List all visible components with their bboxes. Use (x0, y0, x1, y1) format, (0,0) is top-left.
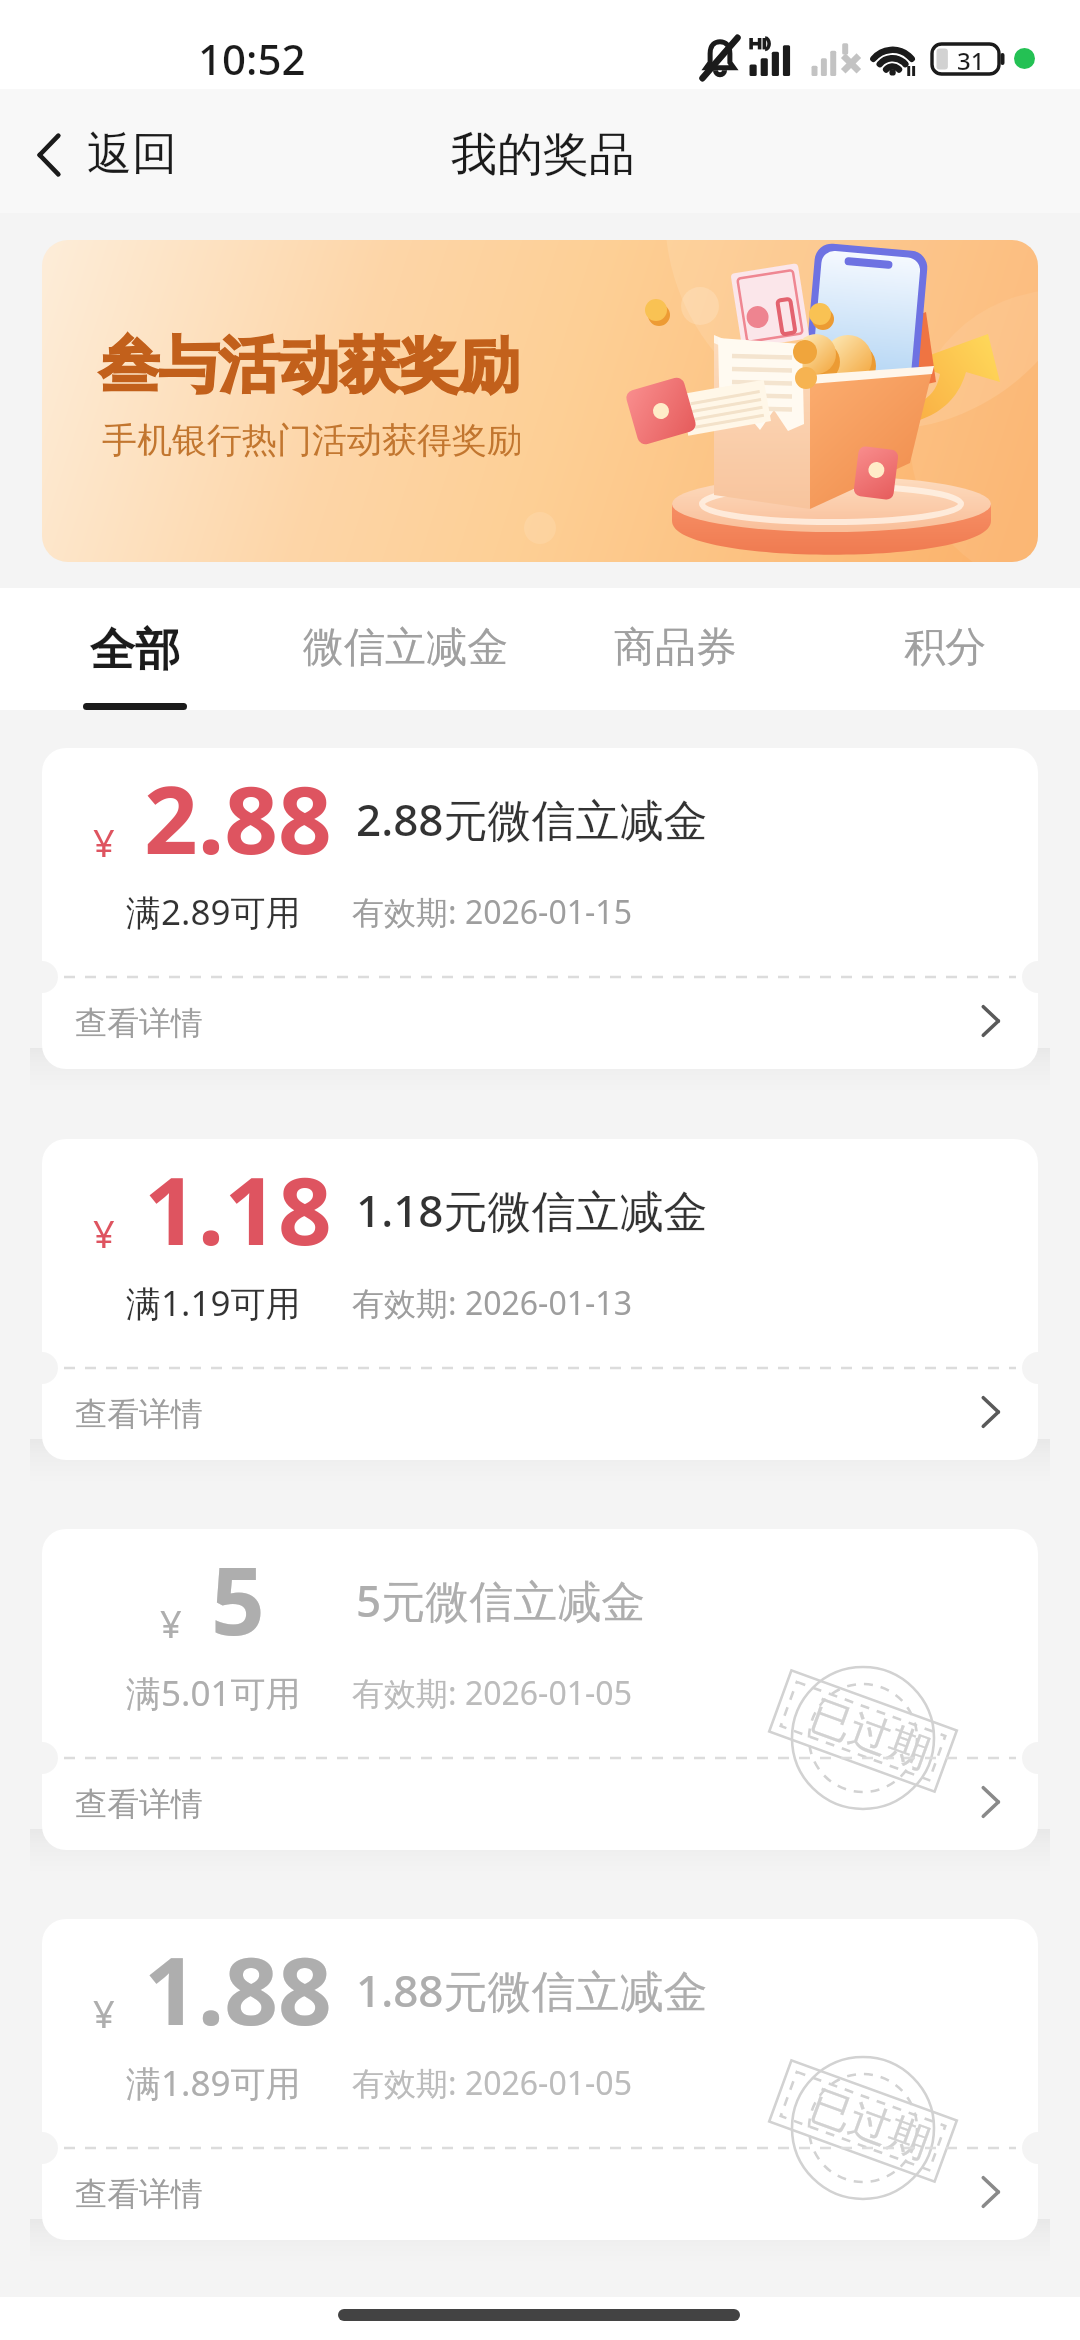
staticText: 满5.01可用 (126, 1669, 301, 1717)
staticText: 5元微信立减金 (356, 1570, 646, 1630)
button[interactable]: ¥ (42, 748, 1038, 1069)
staticText: 我的奖品 (451, 126, 635, 184)
other: View details (976, 1781, 1002, 1823)
button[interactable]: 积分 (810, 588, 1080, 710)
staticText: 1.18 (144, 1145, 332, 1273)
other: View details (976, 1000, 1002, 1042)
staticText: 商品券 (614, 622, 737, 674)
staticText: 1.88 (144, 1925, 332, 2053)
staticText: 有效期: 2026-01-13 (352, 1281, 632, 1325)
staticText: ¥ (93, 816, 115, 868)
staticText: ¥ (93, 1207, 115, 1259)
staticText: ¥ (93, 1987, 115, 2039)
staticText: 手机银行热门活动获得奖励 (102, 418, 522, 462)
button[interactable]: Back (28, 116, 185, 193)
staticText: 有效期: 2026-01-15 (352, 890, 632, 934)
button[interactable]: ¥ (42, 1139, 1038, 1460)
staticText: 全部 (90, 622, 180, 679)
staticText: 查看详情 (75, 1003, 203, 1043)
button[interactable]: 商品券 (540, 588, 810, 710)
other: Back (36, 133, 62, 177)
staticText: 已过期 (803, 1689, 937, 1780)
staticText: ¥ (160, 1597, 182, 1649)
staticText: 满1.89可用 (126, 2059, 301, 2107)
staticText: 5 (211, 1535, 265, 1663)
staticText: 10:52 (198, 30, 306, 87)
other: View details (976, 1391, 1002, 1433)
staticText: 2.88元微信立减金 (356, 789, 708, 849)
staticText: 2.88 (144, 754, 332, 882)
staticText: 1.88元微信立减金 (356, 1960, 708, 2020)
button[interactable]: 叁与活动获奖励 (42, 240, 1038, 562)
staticText: 有效期: 2026-01-05 (352, 2061, 632, 2105)
staticText: 满1.19可用 (126, 1279, 301, 1327)
staticText: 返回 (87, 126, 177, 183)
staticText: 31 (957, 44, 985, 74)
staticText: 1.18元微信立减金 (356, 1180, 708, 1240)
staticText: 查看详情 (75, 1394, 203, 1434)
button[interactable]: 微信立减金 (270, 588, 540, 710)
staticText: 查看详情 (75, 2174, 203, 2214)
button[interactable]: ¥ (42, 1919, 1038, 2240)
button[interactable]: 全部 (0, 588, 270, 710)
staticText: 微信立减金 (303, 622, 508, 674)
staticText: 查看详情 (75, 1784, 203, 1824)
button[interactable]: ¥ (42, 1529, 1038, 1850)
staticText: 叁与活动获奖励 (99, 328, 519, 404)
staticText: 已过期 (803, 2079, 937, 2170)
staticText: 积分 (904, 622, 986, 674)
staticText: 有效期: 2026-01-05 (352, 1671, 632, 1715)
other: View details (976, 2171, 1002, 2213)
staticText: 满2.89可用 (126, 888, 301, 936)
